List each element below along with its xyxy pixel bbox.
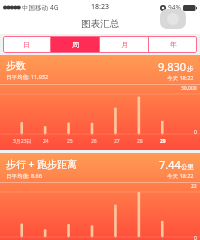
button[interactable]: 日 xyxy=(3,36,50,53)
staticText: 27 xyxy=(114,138,120,145)
button[interactable]: 月 xyxy=(100,36,148,53)
staticText: 步数 xyxy=(6,59,26,72)
staticText: 月 xyxy=(121,40,128,49)
staticText: 9,830 xyxy=(158,59,187,74)
staticText: 29 xyxy=(160,138,166,145)
button[interactable]: 年 xyxy=(149,36,197,53)
staticText: 0 xyxy=(194,235,197,240)
staticText: 24 xyxy=(43,138,49,145)
staticText: 3月23日 xyxy=(13,138,32,145)
staticText: 25 xyxy=(67,138,73,145)
staticText: 年 xyxy=(170,40,177,49)
staticText: 4G xyxy=(50,3,59,12)
button[interactable]: App icon xyxy=(160,9,186,29)
button[interactable]: 周 xyxy=(51,36,99,53)
staticText: 日平均值: 8.66 xyxy=(6,172,42,180)
staticText: 日 xyxy=(23,40,30,49)
staticText: 30,000 xyxy=(181,85,197,92)
staticText: 步行 + 跑步距离 xyxy=(6,157,77,171)
staticText: 步 xyxy=(187,65,194,73)
staticText: 28 xyxy=(137,138,143,145)
staticText: 周 xyxy=(72,40,79,49)
staticText: 94% xyxy=(168,3,181,12)
staticText: 今天 18:22 xyxy=(167,74,194,82)
staticText: 图表汇总 xyxy=(81,18,119,30)
staticText: 公里 xyxy=(181,163,194,171)
staticText: 18:23 xyxy=(91,2,109,12)
staticText: 中国移动 xyxy=(22,4,48,12)
button[interactable]: 步行 + 跑步距离 xyxy=(0,153,200,240)
staticText: 22 xyxy=(191,183,197,190)
staticText: 日平均值: 11,932 xyxy=(6,73,49,81)
staticText: 0 xyxy=(194,129,197,136)
button[interactable]: 步数 xyxy=(0,55,200,150)
staticText: 26 xyxy=(91,138,97,145)
staticText: 7.44 xyxy=(159,157,181,172)
staticText: 今天 18:22 xyxy=(167,172,194,180)
